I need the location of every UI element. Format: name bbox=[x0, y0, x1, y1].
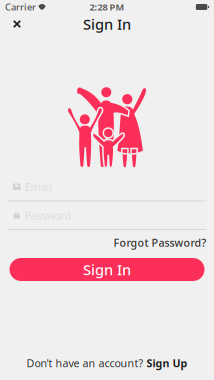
staticText: Password bbox=[24, 208, 71, 222]
staticText: Sign In bbox=[83, 14, 131, 34]
staticText: Don't have an account? bbox=[26, 356, 143, 370]
button[interactable]: Close bbox=[6, 13, 28, 35]
staticText: Forgot Password? bbox=[113, 235, 206, 250]
staticText: Carrier bbox=[5, 1, 36, 13]
staticText: Sign In bbox=[83, 260, 131, 279]
button[interactable]: Forgot Password? bbox=[113, 235, 206, 250]
staticText: Email bbox=[24, 180, 52, 194]
staticText: Sign Up bbox=[146, 356, 187, 370]
staticText: 2:28 PM bbox=[89, 1, 124, 13]
button[interactable]: Sign In bbox=[9, 258, 204, 281]
button[interactable]: Sign Up bbox=[143, 356, 187, 370]
